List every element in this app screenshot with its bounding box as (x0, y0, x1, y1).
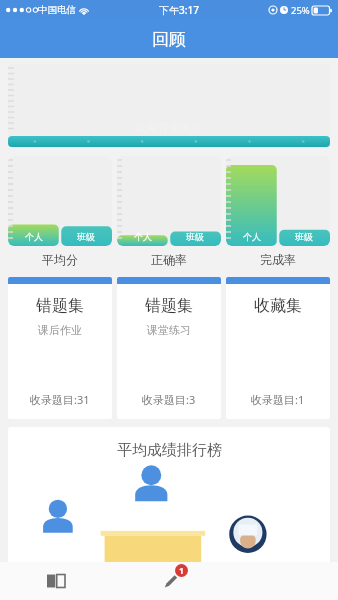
button[interactable]: 错题集 (117, 277, 221, 419)
staticText: 收录题目:3 (142, 392, 196, 407)
staticText: 25% (291, 4, 310, 17)
staticText: 下午3:17 (159, 3, 199, 17)
button[interactable]: 个人 (226, 156, 330, 267)
staticText: 平均分 (42, 252, 78, 267)
button[interactable]: 个人 (117, 156, 221, 267)
staticText: 个人 (243, 231, 261, 242)
staticText: 完成率 (260, 252, 296, 267)
staticText: 个人 (25, 231, 43, 242)
button[interactable]: Book (0, 562, 112, 600)
button[interactable]: Edit, 1 new (112, 562, 225, 600)
staticText: 错题集 (36, 296, 84, 316)
staticText: 正确率 (151, 252, 187, 267)
staticText: 班级 (77, 231, 95, 242)
staticText: 1 (179, 565, 184, 577)
staticText: 收录题目:31 (30, 392, 90, 407)
staticText: 收录题目:1 (251, 392, 305, 407)
staticText: 平均成绩排行榜 (117, 441, 222, 460)
staticText: 班级 (186, 231, 204, 242)
staticText: 回顾 (152, 29, 186, 50)
button[interactable]: 个人 (8, 156, 112, 267)
staticText: 课后作业 (38, 323, 82, 337)
button[interactable]: 错题集 (8, 277, 112, 419)
staticText: 课堂练习 (147, 323, 191, 337)
staticText: 错题集 (145, 296, 193, 316)
staticText: 中国电信 (38, 4, 76, 16)
button[interactable]: 近期作业情况 (8, 64, 330, 148)
button[interactable]: 收藏集 (226, 277, 330, 419)
staticText: 班级 (295, 231, 313, 242)
staticText: 收藏集 (254, 296, 302, 316)
staticText: 个人 (134, 231, 152, 242)
button[interactable]: 平均成绩排行榜 (8, 427, 330, 600)
